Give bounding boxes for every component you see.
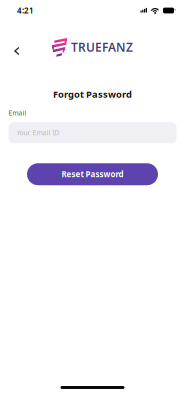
button[interactable]: Your Email ID: [8, 122, 176, 143]
button[interactable]: Back: [6, 32, 28, 62]
button[interactable]: Reset Password: [27, 163, 158, 185]
staticText: Email: [8, 108, 26, 117]
staticText: Reset Password: [61, 169, 123, 179]
staticText: Your Email ID: [16, 128, 59, 137]
staticText: 4:21: [17, 5, 34, 16]
staticText: TRUEFANZ: [71, 39, 133, 55]
staticText: Forgot Password: [53, 88, 132, 100]
